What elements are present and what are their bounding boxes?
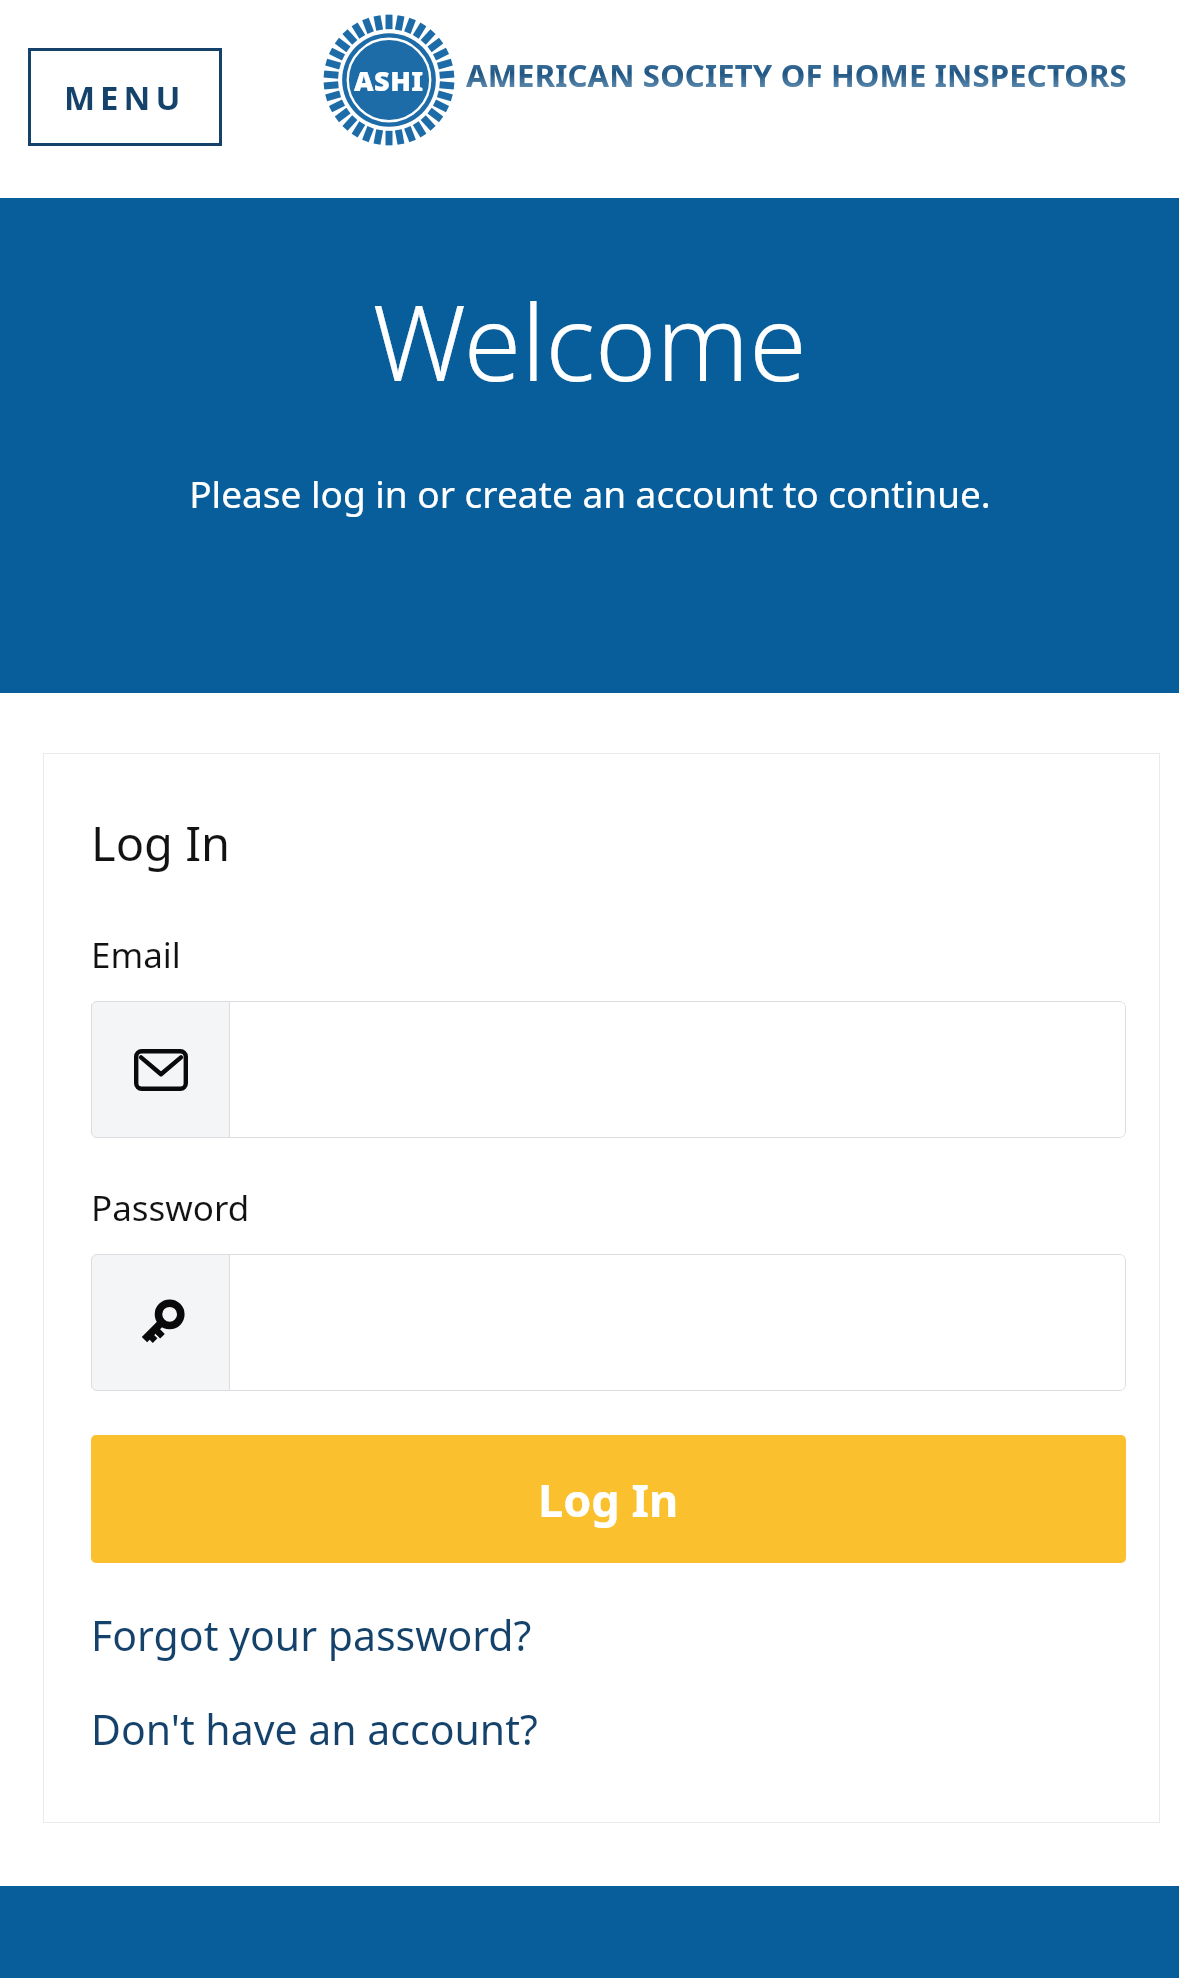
- staticText: Log In: [91, 811, 231, 875]
- other: Password: [135, 1297, 187, 1349]
- other: Email: [134, 1049, 188, 1091]
- staticText: Password: [91, 1184, 250, 1232]
- staticText: ASHI: [354, 62, 424, 99]
- button[interactable]: Password: [91, 1254, 1126, 1391]
- staticText: Welcome: [372, 270, 807, 412]
- staticText: Please log in or create an account to co…: [189, 468, 991, 518]
- button[interactable]: Log In: [91, 1435, 1126, 1563]
- staticText: Don't have an account?: [91, 1701, 538, 1757]
- button[interactable]: Email: [91, 1001, 1126, 1138]
- staticText: AMERICAN SOCIETY OF HOME INSPECTORS: [466, 54, 1127, 96]
- staticText: Forgot your password?: [91, 1607, 532, 1663]
- button[interactable]: MENU: [28, 48, 222, 146]
- button[interactable]: Forgot your password?: [91, 1607, 532, 1663]
- button[interactable]: Don't have an account?: [91, 1701, 538, 1757]
- staticText: Email: [91, 931, 181, 979]
- staticText: Log In: [538, 1469, 679, 1530]
- staticText: MENU: [64, 75, 186, 120]
